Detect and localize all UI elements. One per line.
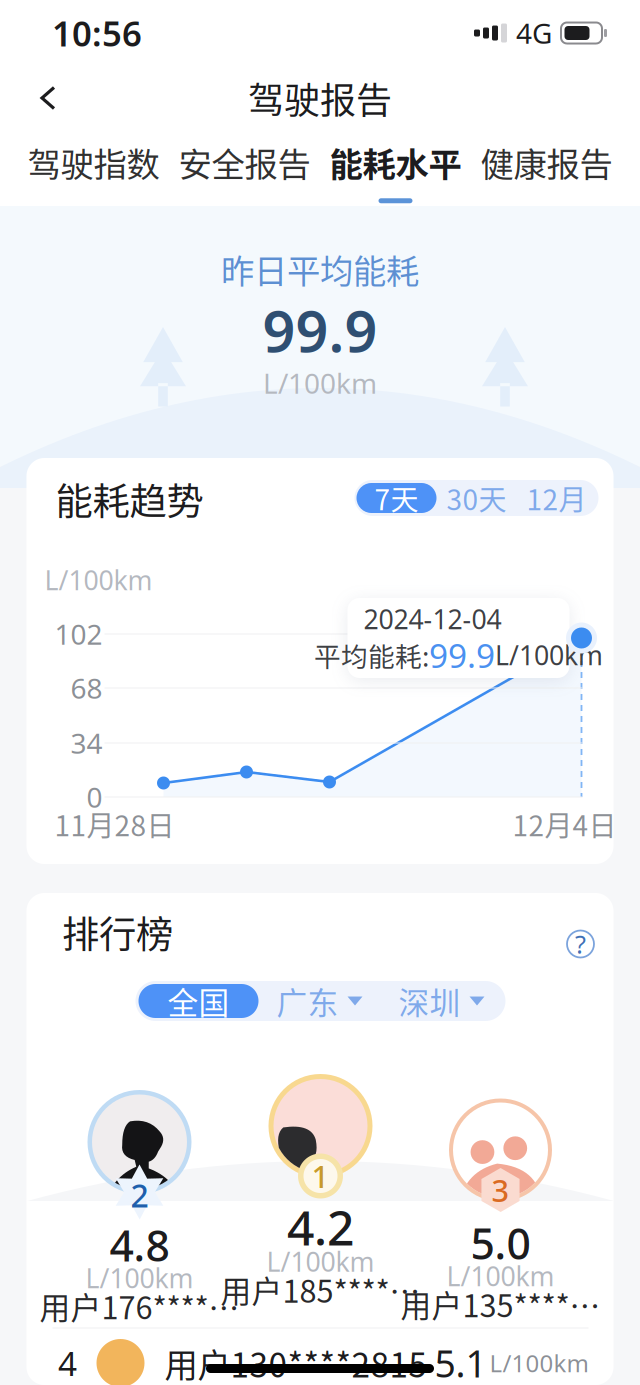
staticText: L/100km (489, 1347, 588, 1379)
staticText: 99.9 (262, 292, 377, 368)
staticText: L/100km (266, 1244, 374, 1279)
staticText: 68 (70, 669, 102, 707)
button[interactable]: 广东 (258, 984, 380, 1018)
button[interactable]: 帮助 (562, 926, 598, 962)
staticText: 用户185****… (220, 1267, 420, 1312)
staticText: 12月4日 (512, 804, 616, 844)
staticText: 1 (311, 1156, 329, 1196)
staticText: 2 (130, 1174, 148, 1216)
staticText: 全国 (167, 979, 229, 1023)
staticText: 4G (516, 14, 552, 52)
staticText: 能耗水平 (329, 138, 461, 186)
staticText: 排行榜 (62, 905, 173, 959)
button[interactable]: 返回 (24, 73, 72, 122)
button[interactable]: 驾驶指数 (18, 130, 169, 206)
staticText: 2024-12-04 (363, 601, 501, 637)
button[interactable]: 深圳 (380, 984, 502, 1018)
staticText: 4.2 (287, 1195, 354, 1259)
staticText: 驾驶指数 (27, 138, 159, 186)
staticText: 能耗趋势 (55, 472, 203, 526)
staticText: 102 (54, 615, 102, 653)
staticText: 99.9 (429, 633, 495, 677)
button[interactable]: 4 (52, 1331, 588, 1385)
staticText: 7天 (374, 478, 418, 518)
staticText: 12月 (526, 478, 586, 518)
staticText: 安全报告 (178, 138, 310, 186)
button[interactable]: 能耗水平 (320, 130, 471, 206)
staticText: 昨日平均能耗 (221, 245, 419, 293)
staticText: 5.1 (434, 1338, 486, 1385)
button[interactable]: 30天 (436, 483, 516, 513)
button[interactable]: 7天 (356, 483, 436, 513)
staticText: 5.0 (470, 1215, 530, 1271)
button[interactable]: 健康报告 (471, 130, 622, 206)
staticText: 深圳 (398, 979, 460, 1023)
staticText: L/100km (44, 562, 152, 598)
staticText: 30天 (446, 478, 506, 518)
button[interactable]: 全国 (138, 984, 258, 1018)
staticText: 11月28日 (54, 804, 174, 844)
staticText: 10:56 (52, 10, 142, 56)
button[interactable]: 12月 (516, 483, 596, 513)
staticText: 用户135****… (400, 1282, 600, 1326)
staticText: 4 (58, 1341, 77, 1385)
staticText: 0 (86, 778, 102, 816)
staticText: 平均能耗: (314, 636, 429, 674)
staticText: ? (575, 927, 586, 961)
staticText: 4.8 (109, 1217, 169, 1273)
button[interactable]: 安全报告 (169, 130, 320, 206)
staticText: 健康报告 (480, 138, 612, 186)
staticText: 广东 (276, 979, 338, 1023)
staticText: L/100km (495, 637, 603, 673)
staticText: L/100km (85, 1260, 193, 1295)
staticText: L/100km (446, 1258, 554, 1293)
staticText: 3 (491, 1170, 509, 1210)
staticText: 驾驶报告 (248, 72, 392, 124)
staticText: L/100km (263, 364, 377, 402)
staticText: 用户130****2815 (164, 1339, 427, 1385)
staticText: 34 (70, 724, 102, 762)
staticText: 用户176****… (39, 1284, 239, 1328)
